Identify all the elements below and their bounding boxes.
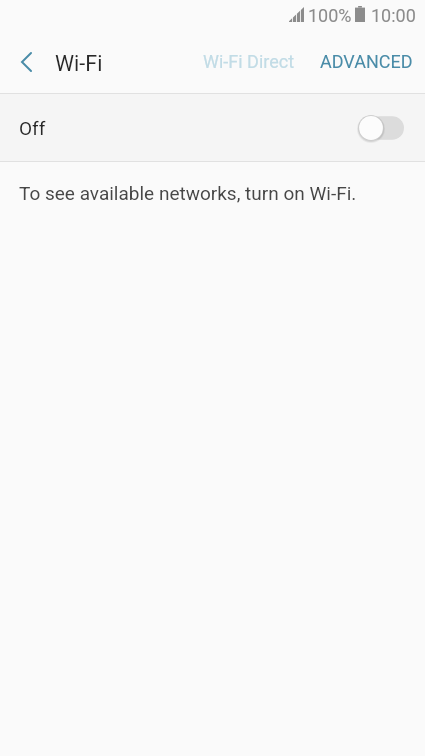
staticText: Wi-Fi Direct — [203, 51, 295, 72]
staticText: 100% — [308, 5, 352, 26]
other: Signal strength — [289, 7, 304, 22]
button[interactable]: ADVANCED — [310, 39, 423, 84]
other: Battery — [355, 6, 365, 22]
other: Wi-Fi off — [358, 114, 404, 142]
staticText: 10:00 — [371, 5, 416, 26]
button[interactable]: Navigate up — [4, 40, 48, 84]
staticText: To see available networks, turn on Wi-Fi… — [19, 182, 357, 204]
staticText: Wi-Fi — [55, 51, 103, 76]
button[interactable]: Wi-Fi Direct — [193, 39, 305, 84]
staticText: Off — [19, 117, 46, 139]
staticText: ADVANCED — [320, 51, 413, 72]
button[interactable]: Off — [0, 94, 425, 161]
